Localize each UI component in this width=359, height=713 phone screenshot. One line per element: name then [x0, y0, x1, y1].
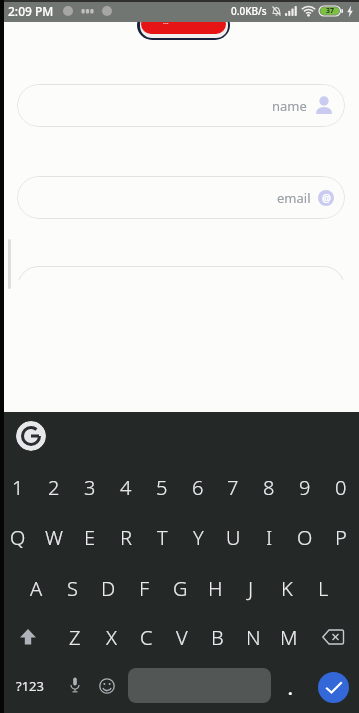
staticText: ...: [163, 17, 169, 27]
staticText: V: [176, 624, 188, 651]
staticText: 0.0KB/s: [231, 4, 267, 18]
button[interactable]: T: [145, 513, 179, 561]
button[interactable]: V: [165, 613, 199, 661]
staticText: Y: [193, 524, 204, 551]
button[interactable]: W: [37, 513, 71, 561]
staticText: A: [30, 575, 43, 602]
button[interactable]: E: [73, 513, 107, 561]
staticText: 5: [156, 474, 168, 501]
button[interactable]: [11, 620, 45, 654]
staticText: 3: [84, 474, 96, 501]
button[interactable]: R: [109, 513, 143, 561]
button[interactable]: N: [236, 613, 270, 661]
button[interactable]: P: [324, 513, 358, 561]
button[interactable]: C: [129, 613, 163, 661]
button[interactable]: X: [94, 613, 128, 661]
staticText: email: [277, 189, 311, 207]
staticText: Z: [69, 624, 81, 651]
button[interactable]: M: [272, 613, 306, 661]
button[interactable]: [16, 421, 46, 451]
staticText: name: [272, 97, 307, 115]
staticText: W: [45, 524, 63, 551]
button[interactable]: ?123: [10, 670, 50, 702]
button[interactable]: H: [198, 564, 232, 612]
staticText: D: [101, 575, 116, 602]
button[interactable]: [128, 668, 271, 703]
staticText: .: [288, 678, 293, 700]
staticText: G: [173, 575, 188, 602]
button[interactable]: 4: [109, 463, 143, 511]
staticText: ?123: [16, 677, 44, 695]
button[interactable]: K: [270, 564, 304, 612]
staticText: S: [67, 575, 78, 602]
staticText: 1: [12, 474, 24, 501]
staticText: F: [139, 575, 150, 602]
button[interactable]: 2: [37, 463, 71, 511]
button[interactable]: 0: [324, 463, 358, 511]
staticText: Q: [10, 524, 26, 551]
staticText: M: [280, 624, 298, 651]
staticText: C: [140, 624, 153, 651]
button[interactable]: [318, 672, 349, 703]
button[interactable]: S: [55, 564, 89, 612]
staticText: 6: [192, 474, 204, 501]
staticText: O: [297, 524, 313, 551]
staticText: 4: [120, 474, 132, 501]
staticText: @: [322, 191, 331, 205]
button[interactable]: 6: [181, 463, 215, 511]
staticText: 37: [326, 6, 335, 16]
button[interactable]: ...: [137, 10, 230, 40]
button[interactable]: B: [200, 613, 234, 661]
button[interactable]: U: [216, 513, 250, 561]
button[interactable]: 1: [1, 463, 35, 511]
staticText: P: [335, 524, 347, 551]
staticText: R: [120, 524, 132, 551]
staticText: 8: [263, 474, 275, 501]
staticText: N: [246, 624, 261, 651]
button[interactable]: L: [306, 564, 340, 612]
button[interactable]: D: [91, 564, 125, 612]
staticText: 0: [335, 474, 347, 501]
button[interactable]: G: [163, 564, 197, 612]
staticText: U: [226, 524, 241, 551]
button[interactable]: name: [17, 84, 345, 127]
button[interactable]: 3: [73, 463, 107, 511]
button[interactable]: .: [278, 670, 302, 702]
button[interactable]: 7: [216, 463, 250, 511]
button[interactable]: I: [252, 513, 286, 561]
button[interactable]: 8: [252, 463, 286, 511]
staticText: J: [248, 575, 254, 602]
staticText: I: [266, 524, 273, 551]
button[interactable]: 5: [145, 463, 179, 511]
staticText: 2: [48, 474, 60, 501]
button[interactable]: F: [127, 564, 161, 612]
staticText: K: [281, 575, 293, 602]
button[interactable]: [61, 670, 89, 702]
button[interactable]: A: [19, 564, 53, 612]
staticText: 2:09 PM: [8, 3, 54, 19]
staticText: 7: [227, 474, 239, 501]
button[interactable]: [316, 620, 350, 654]
staticText: T: [157, 524, 168, 551]
button[interactable]: Y: [181, 513, 215, 561]
button[interactable]: [93, 670, 121, 702]
staticText: X: [106, 624, 117, 651]
button[interactable]: J: [234, 564, 268, 612]
button[interactable]: email: [17, 176, 345, 219]
staticText: E: [84, 524, 96, 551]
button[interactable]: Q: [1, 513, 35, 561]
staticText: 9: [299, 474, 311, 501]
button[interactable]: 9: [288, 463, 322, 511]
staticText: L: [318, 575, 329, 602]
staticText: B: [211, 624, 224, 651]
button[interactable]: O: [288, 513, 322, 561]
staticText: H: [208, 575, 223, 602]
button[interactable]: Z: [58, 613, 92, 661]
